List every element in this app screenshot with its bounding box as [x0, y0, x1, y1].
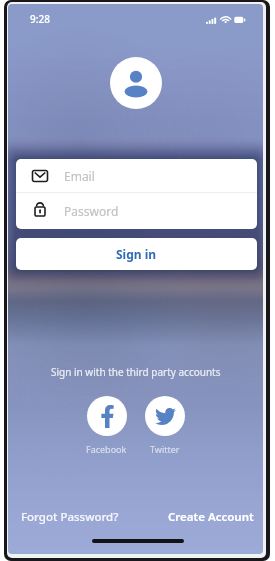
button[interactable]: Create Account	[168, 509, 254, 525]
button[interactable]: Facebook	[86, 396, 127, 455]
staticText: Sign in with the third party accounts	[51, 365, 221, 379]
staticText: Twitter	[150, 443, 180, 455]
staticText: Forgot Password?	[21, 509, 119, 525]
button[interactable]: Forgot Password?	[21, 509, 119, 525]
button[interactable]: Email	[16, 159, 257, 192]
button[interactable]: Password	[16, 193, 257, 229]
staticText: 9:28	[30, 12, 50, 26]
staticText: Sign in	[116, 246, 157, 262]
staticText: Password	[64, 203, 119, 219]
button[interactable]: Twitter	[145, 396, 185, 455]
staticText: Facebook	[86, 443, 127, 455]
button[interactable]: Sign in	[16, 238, 257, 270]
staticText: Email	[64, 168, 95, 184]
staticText: Create Account	[168, 509, 254, 525]
